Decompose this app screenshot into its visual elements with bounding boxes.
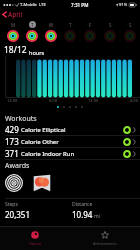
button[interactable]: 173: [0, 136, 140, 148]
staticText: 371: [5, 148, 19, 159]
staticText: Awards: [5, 161, 30, 171]
staticText: 6:00: [130, 98, 138, 103]
staticText: April: [8, 10, 23, 19]
staticText: 18/12: [4, 44, 27, 56]
staticText: History: [29, 241, 42, 246]
staticText: mi: [94, 213, 100, 220]
button[interactable]: M: [3, 21, 22, 43]
button[interactable]: 429: [0, 124, 140, 136]
staticText: Workouts: [5, 114, 37, 124]
staticText: S: [129, 22, 132, 28]
staticText: Calorie Elliptical: [21, 126, 66, 134]
staticText: M: [11, 22, 16, 28]
button[interactable]: Achievements: [70, 227, 140, 250]
staticText: LTE: [39, 2, 46, 8]
staticText: 10.94: [72, 209, 93, 220]
button[interactable]: Award: Move goal: [5, 174, 23, 192]
button[interactable]: 371: [0, 148, 140, 160]
staticText: Calorie Indoor Run: [21, 150, 75, 158]
staticText: 6:00: [49, 98, 57, 103]
button[interactable]: April: [0, 8, 27, 20]
staticText: Achievements: [93, 241, 117, 246]
button[interactable]: W: [41, 21, 60, 43]
button[interactable]: Award: Workout badge: [33, 174, 51, 192]
button[interactable]: T: [60, 21, 80, 43]
staticText: 12:00: [88, 98, 99, 103]
staticText: W: [49, 22, 54, 28]
staticText: F: [89, 22, 92, 28]
button[interactable]: S: [120, 21, 140, 43]
staticText: 7:31 PM: [71, 2, 89, 8]
staticText: T: [69, 22, 72, 28]
staticText: 91%: [119, 2, 128, 8]
button[interactable]: T: [22, 21, 41, 43]
staticText: hours: [29, 49, 45, 56]
staticText: 429: [5, 124, 19, 135]
staticText: T: [31, 22, 34, 28]
staticText: Steps: [5, 201, 18, 208]
staticText: Calorie Other: [21, 138, 59, 146]
staticText: S: [109, 22, 112, 28]
staticText: 173: [5, 136, 19, 147]
staticText: T-Mobile: [20, 2, 37, 8]
button[interactable]: History: [0, 227, 70, 250]
staticText: 20,351: [5, 209, 31, 220]
staticText: Distance: [72, 201, 93, 208]
button[interactable]: F: [80, 21, 100, 43]
button[interactable]: S: [100, 21, 120, 43]
staticText: 12:00: [7, 98, 18, 103]
